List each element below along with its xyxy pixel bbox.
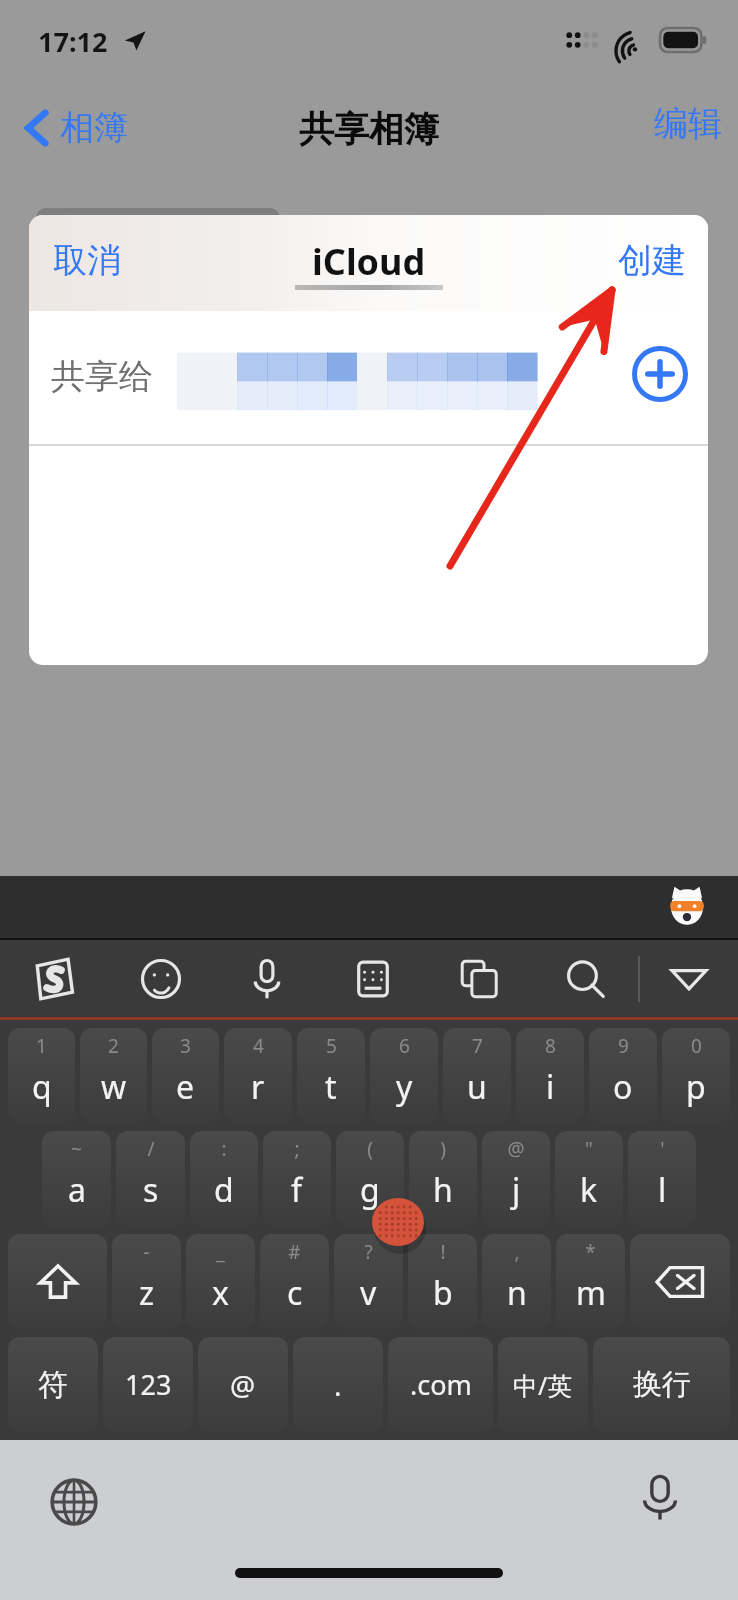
- button[interactable]: Backspace: [630, 1234, 730, 1329]
- button[interactable]: _: [186, 1234, 255, 1329]
- staticText: 中/英: [513, 1368, 573, 1402]
- button[interactable]: 2: [80, 1028, 147, 1123]
- button[interactable]: Sogou: [0, 938, 107, 1020]
- button[interactable]: 取消: [29, 235, 145, 286]
- staticText: ): [440, 1136, 446, 1162]
- button[interactable]: Shift: [8, 1234, 107, 1329]
- button[interactable]: 1: [8, 1028, 75, 1123]
- button[interactable]: :: [190, 1131, 258, 1226]
- staticText: .com: [410, 1366, 472, 1403]
- button[interactable]: 换行: [593, 1337, 730, 1432]
- button[interactable]: 4: [224, 1028, 292, 1123]
- staticText: 换行: [633, 1366, 691, 1403]
- staticText: d: [214, 1168, 234, 1212]
- button[interactable]: 7: [443, 1028, 511, 1123]
- staticText: 123: [125, 1366, 172, 1403]
- button[interactable]: 符: [8, 1337, 98, 1432]
- button[interactable]: 5: [297, 1028, 365, 1123]
- button[interactable]: 中/英: [498, 1337, 588, 1432]
- staticText: l: [658, 1168, 667, 1212]
- staticText: ,: [514, 1239, 520, 1265]
- button[interactable]: Voice input: [630, 1468, 690, 1528]
- button[interactable]: Voice input: [214, 938, 320, 1020]
- staticText: h: [433, 1168, 453, 1212]
- staticText: p: [686, 1065, 706, 1109]
- button[interactable]: 0: [662, 1028, 730, 1123]
- staticText: .: [334, 1366, 342, 1404]
- staticText: j: [512, 1168, 521, 1212]
- button[interactable]: (: [336, 1131, 404, 1226]
- staticText: ~: [71, 1136, 82, 1162]
- staticText: 5: [326, 1033, 337, 1059]
- button[interactable]: ?: [334, 1234, 403, 1329]
- button[interactable]: Search: [532, 938, 638, 1020]
- staticText: (: [367, 1136, 373, 1162]
- button[interactable]: ;: [263, 1131, 331, 1226]
- staticText: 相簿: [60, 106, 128, 149]
- staticText: iCloud: [312, 237, 426, 286]
- button[interactable]: 6: [370, 1028, 438, 1123]
- button[interactable]: @: [482, 1131, 550, 1226]
- staticText: :: [221, 1136, 227, 1162]
- staticText: u: [467, 1065, 487, 1109]
- button[interactable]: Translate: [426, 938, 532, 1020]
- staticText: x: [212, 1271, 229, 1315]
- button[interactable]: Add contact: [629, 343, 691, 405]
- staticText: f: [291, 1168, 303, 1212]
- button[interactable]: ": [555, 1131, 623, 1226]
- staticText: 8: [545, 1033, 556, 1059]
- staticText: ;: [294, 1136, 300, 1162]
- staticText: v: [360, 1271, 377, 1315]
- button[interactable]: ,: [482, 1234, 551, 1329]
- staticText: ?: [364, 1239, 373, 1265]
- button[interactable]: 相簿: [18, 102, 134, 153]
- button[interactable]: 3: [152, 1028, 219, 1123]
- staticText: -: [143, 1239, 150, 1265]
- staticText: *: [585, 1239, 596, 1265]
- staticText: m: [576, 1271, 606, 1315]
- button[interactable]: -: [112, 1234, 181, 1329]
- staticText: 0: [691, 1033, 702, 1059]
- button[interactable]: 创建: [596, 235, 708, 286]
- button[interactable]: Emoji: [107, 938, 214, 1020]
- staticText: !: [440, 1239, 446, 1265]
- button[interactable]: .: [293, 1337, 383, 1432]
- staticText: 6: [399, 1033, 410, 1059]
- staticText: c: [287, 1271, 303, 1315]
- button[interactable]: 9: [589, 1028, 657, 1123]
- staticText: #: [288, 1239, 301, 1265]
- staticText: k: [580, 1168, 598, 1212]
- staticText: 3: [180, 1033, 191, 1059]
- staticText: n: [507, 1271, 527, 1315]
- button[interactable]: 8: [516, 1028, 584, 1123]
- staticText: 9: [618, 1033, 629, 1059]
- button[interactable]: @: [198, 1337, 288, 1432]
- button[interactable]: 123: [103, 1337, 193, 1432]
- staticText: i: [546, 1065, 555, 1109]
- staticText: 7: [472, 1033, 483, 1059]
- staticText: 1: [36, 1033, 47, 1059]
- staticText: ': [660, 1136, 665, 1162]
- staticText: 4: [253, 1033, 264, 1059]
- staticText: b: [433, 1271, 453, 1315]
- button[interactable]: ): [409, 1131, 477, 1226]
- staticText: z: [139, 1271, 155, 1315]
- button[interactable]: 编辑: [638, 98, 738, 149]
- staticText: 共享相簿: [299, 107, 439, 151]
- button[interactable]: #: [260, 1234, 329, 1329]
- button[interactable]: ~: [42, 1131, 111, 1226]
- button[interactable]: ': [628, 1131, 696, 1226]
- button[interactable]: Keyboard: [320, 938, 426, 1020]
- button[interactable]: *: [556, 1234, 625, 1329]
- button[interactable]: Hide keyboard: [640, 938, 738, 1020]
- staticText: y: [396, 1065, 413, 1109]
- staticText: 符: [38, 1366, 68, 1404]
- button[interactable]: /: [116, 1131, 185, 1226]
- button[interactable]: Switch language: [44, 1472, 104, 1532]
- button[interactable]: .com: [388, 1337, 493, 1432]
- button[interactable]: Assistant: [664, 884, 710, 930]
- button[interactable]: !: [408, 1234, 477, 1329]
- staticText: s: [143, 1168, 159, 1212]
- staticText: r: [251, 1065, 265, 1109]
- staticText: 17:12: [38, 23, 108, 60]
